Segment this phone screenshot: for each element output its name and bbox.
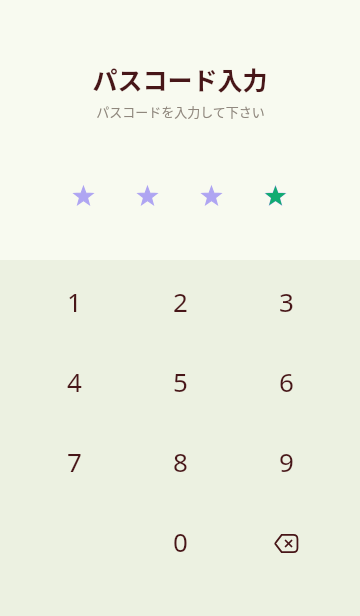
staticText: 4 — [67, 364, 82, 399]
button[interactable]: Backspace — [233, 501, 339, 581]
staticText: 1 — [67, 284, 82, 319]
staticText: 2 — [173, 284, 188, 319]
staticText: 0 — [173, 524, 188, 559]
button[interactable]: 5 — [127, 341, 233, 421]
button[interactable]: 3 — [233, 261, 339, 341]
staticText: 8 — [173, 444, 188, 479]
button[interactable]: 4 — [21, 341, 127, 421]
button[interactable]: 2 — [127, 261, 233, 341]
button[interactable]: 1 — [21, 261, 127, 341]
staticText: 5 — [173, 364, 188, 399]
button[interactable]: 7 — [21, 421, 127, 501]
button[interactable]: 9 — [233, 421, 339, 501]
button[interactable]: 0 — [127, 501, 233, 581]
staticText: 7 — [67, 444, 82, 479]
staticText: パスコード入力 — [92, 61, 268, 97]
staticText: 3 — [279, 284, 294, 319]
staticText: 6 — [279, 364, 294, 399]
button[interactable]: 8 — [127, 421, 233, 501]
button[interactable]: 6 — [233, 341, 339, 421]
staticText: パスコードを入力して下さい — [96, 102, 265, 121]
staticText: 9 — [279, 444, 294, 479]
